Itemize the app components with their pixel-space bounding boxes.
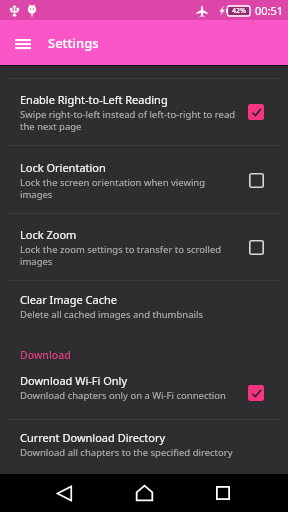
button[interactable]: Open navigation menu [0, 20, 45, 65]
staticText: Download all chapters to the specified d… [20, 446, 233, 459]
staticText: Clear Image Cache [20, 292, 117, 307]
button[interactable]: Lock Orientation [0, 160, 288, 200]
staticText: Lock the zoom settings to transfer to sc… [20, 243, 236, 267]
staticText: 00:51 [255, 3, 284, 18]
staticText: Download Wi-Fi Only [20, 373, 128, 388]
button[interactable]: Toggle setting [243, 235, 269, 259]
button[interactable]: Clear Image Cache [0, 292, 288, 321]
button[interactable]: Recent apps [199, 474, 247, 512]
staticText: Lock the screen orientation when viewing… [20, 176, 236, 200]
button[interactable]: Lock Zoom [0, 227, 288, 267]
button[interactable]: Home [120, 474, 168, 512]
button[interactable]: Toggle setting [243, 100, 269, 124]
staticText: 42% [232, 6, 246, 16]
staticText: Lock Zoom [20, 227, 77, 242]
button[interactable]: Enable Right-to-Left Reading [0, 92, 288, 132]
staticText: Download chapters only on a Wi-Fi connec… [20, 389, 226, 402]
button[interactable]: Back [40, 474, 88, 512]
button[interactable]: Current Download Directory [0, 430, 288, 459]
staticText: Lock Orientation [20, 160, 106, 175]
staticText: Delete all cached images and thumbnails [20, 308, 203, 321]
staticText: Current Download Directory [20, 430, 166, 445]
button[interactable]: Download Wi-Fi Only [0, 373, 288, 402]
staticText: Enable Right-to-Left Reading [20, 92, 168, 107]
button[interactable]: Toggle setting [243, 168, 269, 192]
button[interactable]: Toggle setting [243, 381, 269, 405]
staticText: Swipe right-to-left instead of left-to-r… [20, 108, 236, 132]
staticText: Settings [48, 34, 99, 52]
staticText: Download [20, 348, 71, 362]
